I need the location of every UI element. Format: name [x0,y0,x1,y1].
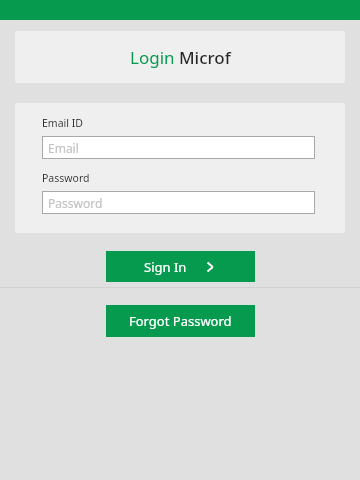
staticText: Password [48,195,103,211]
staticText: Login Microf [130,46,231,69]
button[interactable]: Password [42,191,315,214]
staticText: Email [48,140,79,156]
staticText: Email ID [42,116,83,130]
staticText: Sign In [144,258,187,276]
button[interactable]: Email [42,136,315,159]
staticText: Forgot Password [129,312,232,330]
button[interactable]: Sign In [106,251,255,282]
button[interactable]: Forgot Password [106,305,255,337]
staticText: Password [42,171,90,185]
